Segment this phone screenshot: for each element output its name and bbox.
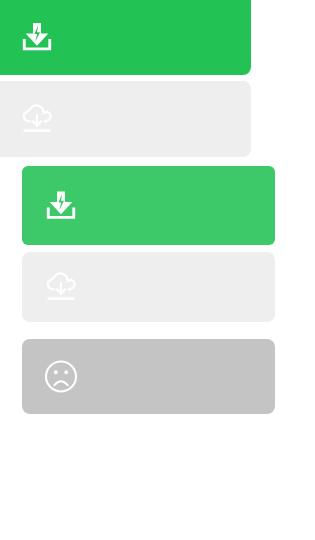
button[interactable]: Quick download [0,0,251,75]
button[interactable]: Download failed [22,339,275,414]
button[interactable]: Quick download [22,166,275,245]
